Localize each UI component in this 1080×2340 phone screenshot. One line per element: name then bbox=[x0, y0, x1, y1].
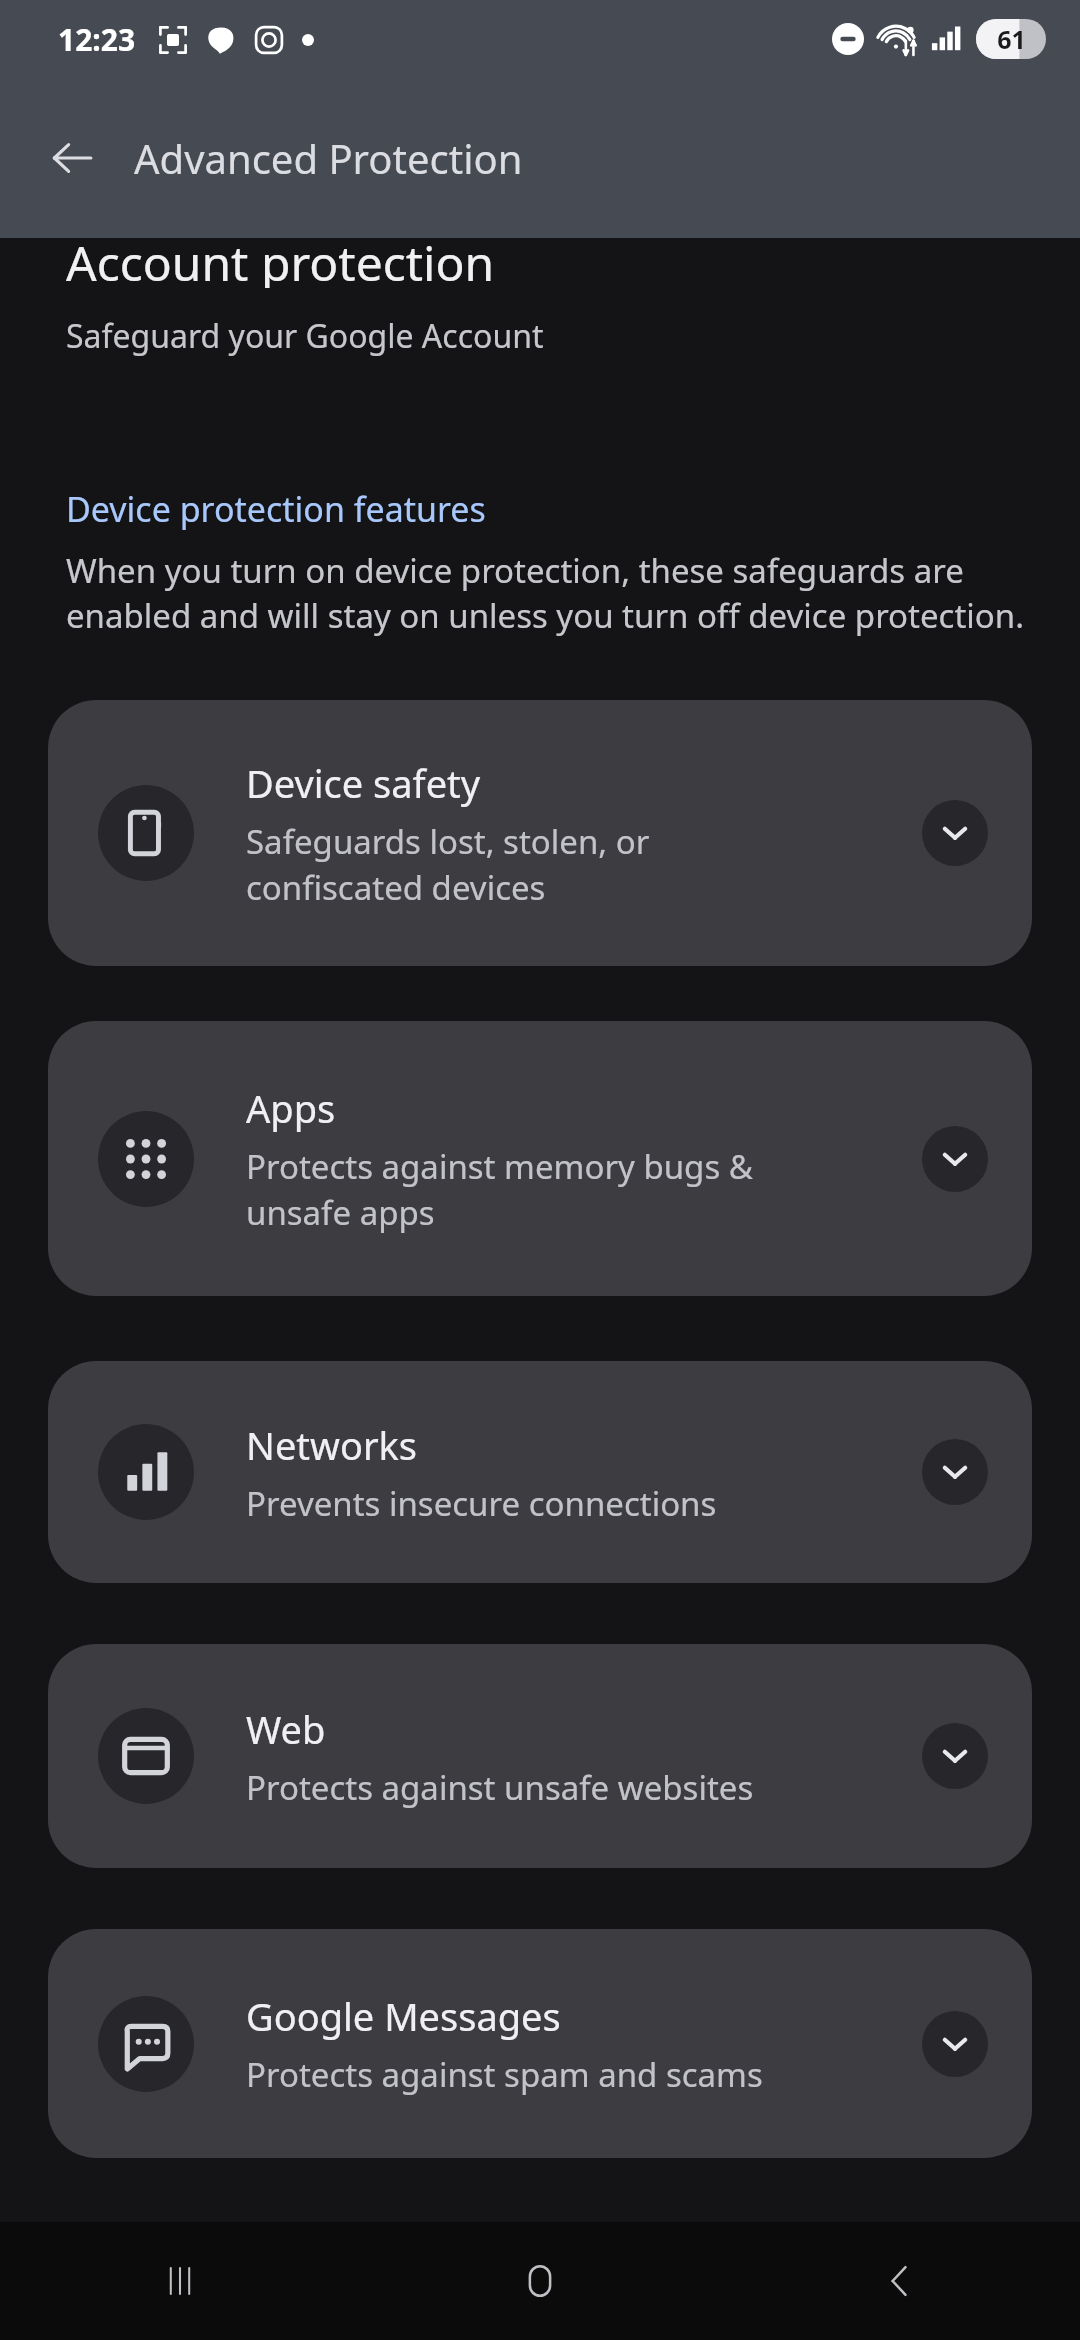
button[interactable]: Back bbox=[34, 120, 110, 196]
staticText: Advanced Protection bbox=[134, 131, 523, 185]
button[interactable]: Back bbox=[720, 2222, 1080, 2340]
button[interactable]: Web bbox=[48, 1644, 1032, 1868]
staticText: Web bbox=[246, 1703, 326, 1755]
button[interactable]: Expand Apps bbox=[922, 1126, 988, 1192]
button[interactable]: Expand Web bbox=[922, 1723, 988, 1789]
button[interactable]: Google Messages bbox=[48, 1929, 1032, 2158]
staticText: 61 bbox=[997, 22, 1026, 56]
staticText: Apps bbox=[246, 1082, 336, 1134]
staticText: Account protection bbox=[66, 244, 495, 288]
staticText: When you turn on device protection, thes… bbox=[66, 548, 1030, 638]
button[interactable]: Networks bbox=[48, 1361, 1032, 1583]
staticText: Protects against unsafe websites bbox=[246, 1765, 754, 1810]
staticText: Device safety bbox=[246, 757, 481, 809]
staticText: Networks bbox=[246, 1419, 418, 1471]
button[interactable]: Apps bbox=[48, 1021, 1032, 1296]
staticText: Safeguards lost, stolen, or confiscated … bbox=[246, 819, 650, 910]
staticText: Device protection features bbox=[66, 486, 486, 532]
button[interactable]: Recents bbox=[0, 2222, 360, 2340]
staticText: 12:23 bbox=[58, 19, 136, 60]
staticText: Protects against memory bugs & unsafe ap… bbox=[246, 1144, 753, 1235]
staticText: Protects against spam and scams bbox=[246, 2052, 763, 2097]
staticText: Prevents insecure connections bbox=[246, 1481, 717, 1526]
staticText: Google Messages bbox=[246, 1990, 561, 2042]
button[interactable]: Expand Networks bbox=[922, 1439, 988, 1505]
staticText: Safeguard your Google Account bbox=[66, 314, 544, 358]
button[interactable]: Expand Google Messages bbox=[922, 2011, 988, 2077]
button[interactable]: Device safety bbox=[48, 700, 1032, 966]
button[interactable]: Home bbox=[360, 2222, 720, 2340]
button[interactable]: Expand Device safety bbox=[922, 800, 988, 866]
